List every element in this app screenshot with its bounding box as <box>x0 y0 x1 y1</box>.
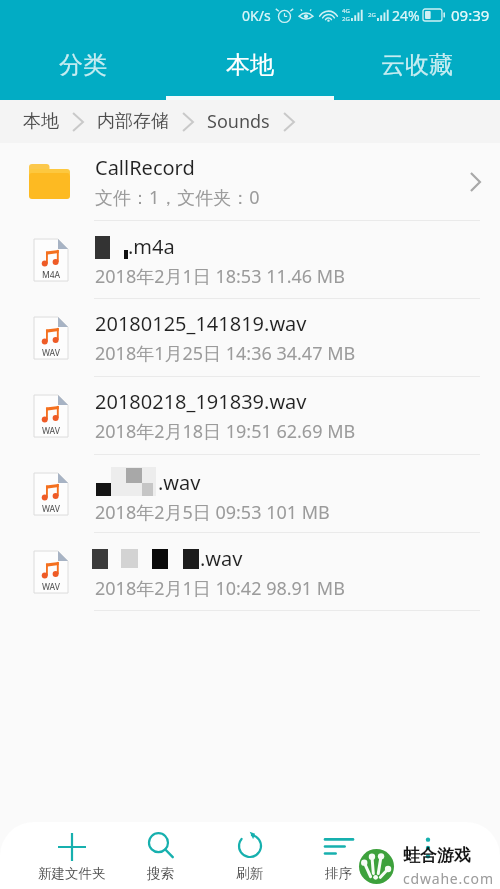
staticText: CallRecord <box>95 154 195 181</box>
staticText: .wav <box>200 545 243 572</box>
staticText: 分类 <box>59 50 107 80</box>
staticText: WAV <box>34 503 68 515</box>
staticText: 2018年1月25日 14:36 34.47 MB <box>95 341 356 366</box>
staticText: 2018年2月5日 09:53 101 MB <box>95 500 330 525</box>
button[interactable]: 刷新 <box>205 822 294 889</box>
staticText: 新建文件夹 <box>38 865 106 882</box>
staticText: 2G <box>368 11 376 19</box>
button[interactable]: More options <box>383 822 472 889</box>
staticText: .m4a <box>128 233 175 260</box>
staticText: 20180125_141819.wav <box>95 310 307 337</box>
button[interactable]: 本地 <box>166 30 333 100</box>
staticText: 本地 <box>23 110 59 133</box>
staticText: 蛙合游戏 <box>403 845 471 866</box>
other: Open folder <box>463 170 487 194</box>
staticText: WAV <box>34 347 68 359</box>
staticText: Sounds <box>207 109 270 134</box>
staticText: 云收藏 <box>381 50 453 80</box>
staticText: 0K/s <box>242 6 271 25</box>
staticText: 搜索 <box>147 865 174 882</box>
button[interactable]: 新建文件夹 <box>28 822 116 889</box>
staticText: 2018年2月1日 18:53 11.46 MB <box>95 264 345 289</box>
staticText: 2018年2月18日 19:51 62.69 MB <box>95 419 356 444</box>
staticText: 2G <box>342 15 350 23</box>
staticText: 2018年2月1日 10:42 98.91 MB <box>95 576 345 601</box>
button[interactable]: 本地 <box>23 110 59 133</box>
staticText: 24% <box>392 6 420 25</box>
staticText: 刷新 <box>236 865 263 882</box>
staticText: WAV <box>34 581 68 593</box>
button[interactable]: WAV <box>0 377 500 454</box>
button[interactable]: WAV <box>0 455 500 532</box>
staticText: 20180218_191839.wav <box>95 388 307 415</box>
button[interactable]: WAV <box>0 299 500 376</box>
staticText: cdwahe.com <box>403 869 494 888</box>
staticText: 内部存储 <box>97 110 169 133</box>
button[interactable]: 分类 <box>0 30 166 100</box>
button[interactable]: CallRecord <box>0 143 500 220</box>
staticText: 排序 <box>325 865 352 882</box>
staticText: 文件：1，文件夹：0 <box>95 185 260 210</box>
button[interactable]: WAV <box>0 533 500 610</box>
button[interactable]: Sounds <box>207 109 270 134</box>
staticText: 本地 <box>226 50 274 80</box>
button[interactable]: 内部存储 <box>97 110 169 133</box>
staticText: M4A <box>34 269 68 281</box>
staticText: 4G <box>342 7 350 15</box>
button[interactable]: 云收藏 <box>333 30 500 100</box>
staticText: .wav <box>158 469 201 496</box>
button[interactable]: 搜索 <box>116 822 205 889</box>
button[interactable]: M4A <box>0 221 500 298</box>
button[interactable]: 排序 <box>294 822 383 889</box>
staticText: 09:39 <box>451 5 490 25</box>
staticText: WAV <box>34 425 68 437</box>
